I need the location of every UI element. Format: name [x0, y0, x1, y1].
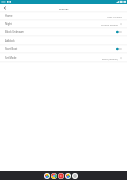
- button[interactable]: Start Boot: [0, 45, 127, 53]
- staticText: Adblock: [5, 39, 15, 43]
- button[interactable]: Night: [0, 20, 127, 28]
- staticText: Block Unknown: [5, 30, 24, 34]
- button[interactable]: Block Unknown: [0, 28, 127, 36]
- staticText: Home: [5, 14, 13, 18]
- button[interactable]: Chrome: [50, 172, 57, 179]
- staticText: Night: [5, 22, 12, 26]
- button[interactable]: App: [71, 172, 78, 179]
- button[interactable]: Photos: [43, 172, 50, 179]
- staticText: User Account: [107, 15, 122, 18]
- button[interactable]: Photos: [64, 172, 71, 179]
- button[interactable]: Adblock: [0, 37, 127, 45]
- staticText: Settings: [59, 7, 69, 10]
- button[interactable]: Set Mode: [0, 54, 127, 62]
- button[interactable]: YouTube: [57, 172, 64, 179]
- staticText: System Default: [101, 23, 118, 26]
- staticText: Set Mode: [5, 56, 17, 60]
- staticText: Start Boot: [5, 47, 18, 51]
- button[interactable]: Back: [0, 4, 9, 12]
- staticText: Basic (default): [102, 57, 118, 60]
- button[interactable]: Home: [0, 12, 127, 20]
